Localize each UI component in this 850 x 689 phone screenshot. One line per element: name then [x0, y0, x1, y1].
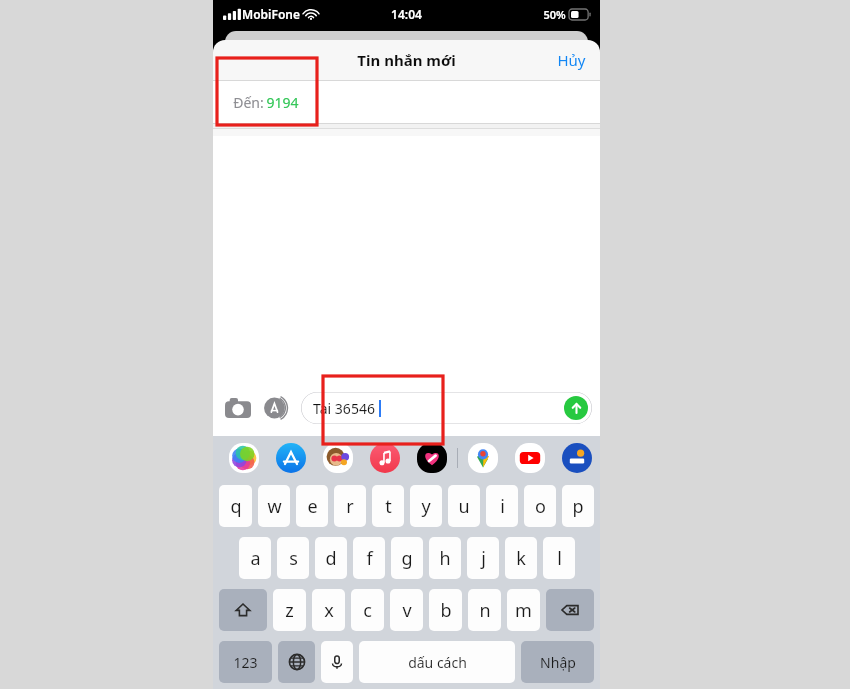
button[interactable]: f [353, 537, 385, 579]
button[interactable]: Send [564, 396, 588, 420]
staticText: g [401, 546, 413, 571]
staticText: v [402, 598, 412, 623]
button[interactable]: Đến: [213, 81, 600, 123]
staticText: d [325, 546, 337, 571]
staticText: p [572, 494, 584, 519]
staticText: 14:04 [391, 6, 422, 22]
button[interactable]: dấu cách [359, 641, 515, 683]
staticText: e [307, 494, 318, 519]
staticText: dấu cách [408, 653, 467, 672]
staticText: n [479, 598, 491, 623]
staticText: l [557, 546, 562, 571]
button[interactable]: Camera [221, 391, 255, 425]
staticText: j [481, 546, 486, 571]
button[interactable]: n [468, 589, 501, 631]
button[interactable]: l [543, 537, 575, 579]
staticText: r [346, 494, 354, 519]
staticText: s [289, 546, 298, 571]
button[interactable]: k [505, 537, 537, 579]
button[interactable]: Maps [468, 443, 498, 473]
button[interactable]: m [507, 589, 540, 631]
staticText: k [516, 546, 526, 571]
button[interactable]: h [429, 537, 461, 579]
staticText: m [515, 598, 532, 623]
button[interactable]: i [486, 485, 518, 527]
button[interactable]: Tai 36546 [301, 392, 592, 424]
button[interactable]: Music [370, 443, 400, 473]
button[interactable]: x [312, 589, 345, 631]
button[interactable]: Hủy [543, 44, 600, 76]
button[interactable]: u [448, 485, 480, 527]
staticText: 123 [233, 653, 258, 672]
button[interactable]: g [391, 537, 423, 579]
button[interactable]: b [429, 589, 462, 631]
staticText: 9194 [266, 93, 299, 112]
button[interactable]: v [390, 589, 423, 631]
button[interactable]: z [273, 589, 306, 631]
button[interactable]: c [351, 589, 384, 631]
button[interactable]: a [239, 537, 271, 579]
button[interactable]: r [334, 485, 366, 527]
button[interactable]: Dictation [321, 641, 353, 683]
button[interactable]: Photos [229, 443, 259, 473]
staticText: Nhập [540, 653, 576, 672]
staticText: a [250, 546, 261, 571]
staticText: Hủy [557, 50, 586, 70]
button[interactable]: 123 [219, 641, 272, 683]
staticText: Tai 36546 [313, 399, 375, 418]
staticText: h [439, 546, 451, 571]
button[interactable]: Shift [219, 589, 267, 631]
button[interactable]: Memoji [323, 443, 353, 473]
button[interactable]: d [315, 537, 347, 579]
button[interactable]: e [296, 485, 328, 527]
staticText: MobiFone [242, 6, 300, 22]
staticText: 50% [543, 7, 566, 22]
button[interactable]: Change keyboard [278, 641, 315, 683]
staticText: u [458, 494, 470, 519]
button[interactable]: App Store [276, 443, 306, 473]
button[interactable]: Backspace [546, 589, 594, 631]
button[interactable]: j [467, 537, 499, 579]
staticText: Đến: [231, 93, 266, 112]
button[interactable]: t [372, 485, 404, 527]
staticText: w [267, 494, 282, 519]
button[interactable]: o [524, 485, 556, 527]
staticText: b [440, 598, 452, 623]
button[interactable]: w [258, 485, 290, 527]
staticText: z [285, 598, 294, 623]
staticText: i [500, 494, 505, 519]
button[interactable]: q [219, 485, 252, 527]
staticText: x [324, 598, 334, 623]
staticText: t [385, 494, 392, 519]
button[interactable]: y [410, 485, 442, 527]
staticText: q [230, 494, 242, 519]
button[interactable]: s [277, 537, 309, 579]
button[interactable]: Lazada [562, 443, 592, 473]
staticText: o [535, 494, 546, 519]
button[interactable]: App Store [259, 391, 293, 425]
staticText: f [366, 546, 373, 571]
button[interactable]: Nhập [521, 641, 594, 683]
button[interactable]: p [562, 485, 594, 527]
staticText: c [363, 598, 372, 623]
staticText: y [421, 494, 431, 519]
button[interactable]: YouTube [515, 443, 545, 473]
staticText: Tin nhắn mới [357, 50, 456, 70]
button[interactable]: Fitness [417, 443, 447, 473]
